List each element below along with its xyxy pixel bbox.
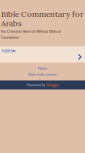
button[interactable]: Home	[0, 47, 16, 54]
staticText: View web version	[28, 72, 57, 76]
staticText: Home	[38, 66, 47, 70]
staticText: Powered by	[26, 83, 45, 87]
staticText: No Christian Revival Without Biblical Fo…	[1, 29, 61, 39]
staticText: Bible Commentary for Arabs	[1, 9, 83, 28]
button[interactable]: Home	[0, 65, 85, 71]
button[interactable]: Next page	[74, 51, 85, 62]
button[interactable]: Powered by	[0, 80, 85, 89]
button[interactable]: View web version	[0, 71, 85, 77]
staticText: Home	[1, 48, 12, 53]
staticText: Blogger	[47, 83, 59, 87]
